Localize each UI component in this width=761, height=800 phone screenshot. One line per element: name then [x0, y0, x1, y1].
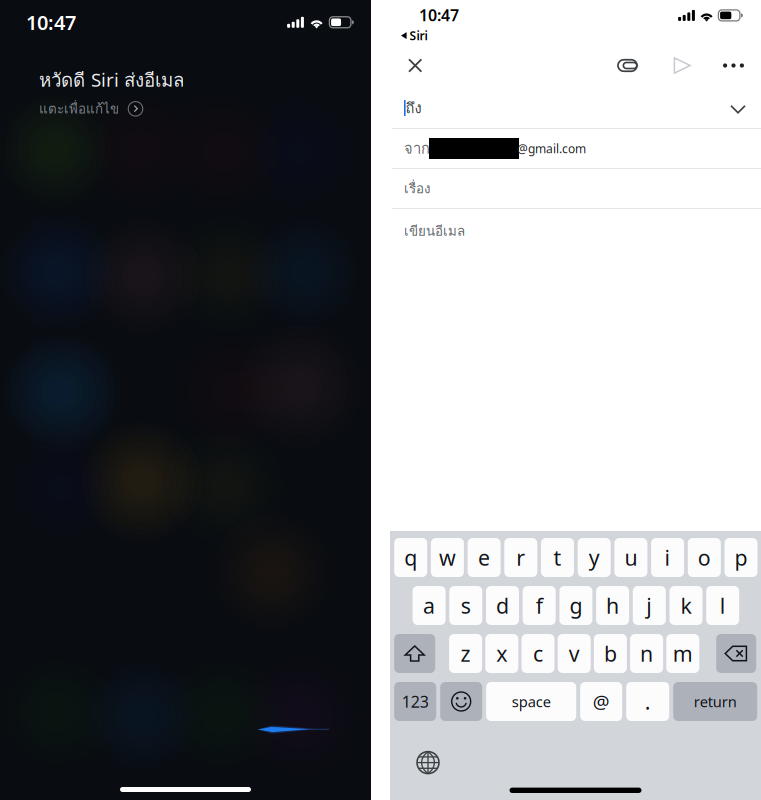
button[interactable]: Attach file — [606, 47, 648, 83]
button[interactable]: l — [706, 586, 739, 625]
button[interactable]: g — [559, 586, 592, 625]
button[interactable]: m — [666, 634, 699, 673]
staticText: 10:47 — [26, 9, 76, 36]
staticText: 123 — [402, 691, 429, 712]
staticText: 10:47 — [419, 4, 459, 26]
staticText: เขียนอีเมล — [404, 221, 465, 241]
button[interactable]: n — [630, 634, 663, 673]
button[interactable]: d — [486, 586, 519, 625]
button[interactable]: b — [594, 634, 627, 673]
staticText: จาก — [404, 137, 430, 160]
staticText: c — [533, 639, 543, 668]
button[interactable]: Shift — [394, 634, 435, 673]
staticText: a — [423, 591, 435, 620]
staticText: @ — [593, 689, 610, 714]
staticText: m — [673, 639, 693, 668]
staticText: . — [645, 687, 651, 716]
button[interactable]: w — [431, 538, 464, 577]
staticText: q — [404, 543, 417, 572]
staticText: return — [694, 692, 737, 711]
staticText: p — [734, 543, 747, 572]
button[interactable]: space — [486, 682, 576, 721]
button[interactable]: @ — [580, 682, 622, 721]
button[interactable]: u — [614, 538, 647, 577]
staticText: b — [604, 639, 617, 668]
button[interactable]: e — [468, 538, 501, 577]
staticText: t — [553, 543, 561, 572]
button[interactable]: 123 — [394, 682, 436, 721]
staticText: เรื่อง — [404, 178, 431, 199]
staticText: l — [720, 591, 726, 620]
staticText: s — [461, 591, 471, 620]
button[interactable]: v — [558, 634, 591, 673]
staticText: Siri — [409, 28, 427, 44]
staticText: o — [698, 543, 711, 572]
button[interactable]: j — [633, 586, 666, 625]
staticText: หวัดดี Siri ส่งอีเมล — [39, 66, 184, 94]
button[interactable]: c — [521, 634, 554, 673]
button[interactable]: เขียนอีเมล — [390, 209, 761, 253]
button[interactable]: p — [724, 538, 757, 577]
staticText: g — [569, 591, 582, 620]
staticText: k — [680, 591, 691, 620]
staticText: j — [646, 591, 652, 620]
button[interactable]: Send — [662, 48, 702, 83]
button[interactable]: s — [449, 586, 482, 625]
button[interactable]: r — [504, 538, 537, 577]
button[interactable]: Switch keyboard — [408, 743, 448, 783]
staticText: ถึง — [406, 97, 422, 119]
button[interactable]: y — [578, 538, 611, 577]
button[interactable]: a — [413, 586, 446, 625]
button[interactable]: Close — [398, 48, 432, 83]
button[interactable]: f — [523, 586, 556, 625]
staticText: v — [569, 639, 580, 668]
staticText: r — [516, 543, 525, 572]
button[interactable]: z — [449, 634, 482, 673]
staticText: x — [496, 639, 507, 668]
button[interactable]: Siri — [401, 26, 427, 44]
button[interactable]: ถึง — [390, 88, 761, 128]
button[interactable]: return — [673, 682, 757, 721]
button[interactable]: จาก — [390, 129, 761, 168]
staticText: แตะเพื่อแก้ไข — [39, 98, 119, 119]
button[interactable]: Delete — [716, 634, 756, 673]
staticText: i — [665, 543, 671, 572]
button[interactable]: Emoji — [440, 682, 482, 721]
staticText: u — [624, 543, 637, 572]
staticText: d — [496, 591, 509, 620]
button[interactable]: o — [688, 538, 721, 577]
staticText: e — [478, 543, 490, 572]
staticText: z — [461, 639, 471, 668]
button[interactable]: . — [626, 682, 669, 721]
button[interactable]: i — [651, 538, 684, 577]
staticText: @gmail.com — [517, 140, 586, 156]
button[interactable]: เรื่อง — [390, 169, 761, 208]
button[interactable]: More options — [713, 49, 754, 82]
button[interactable]: h — [596, 586, 629, 625]
staticText: n — [640, 639, 653, 668]
button[interactable]: k — [669, 586, 702, 625]
staticText: w — [439, 543, 456, 572]
staticText: y — [589, 543, 600, 572]
staticText: h — [606, 591, 619, 620]
staticText: space — [512, 692, 551, 711]
button[interactable]: t — [541, 538, 574, 577]
staticText: f — [536, 591, 543, 620]
button[interactable]: q — [394, 538, 427, 577]
button[interactable]: x — [485, 634, 518, 673]
button[interactable]: แตะเพื่อแก้ไข — [0, 94, 143, 119]
